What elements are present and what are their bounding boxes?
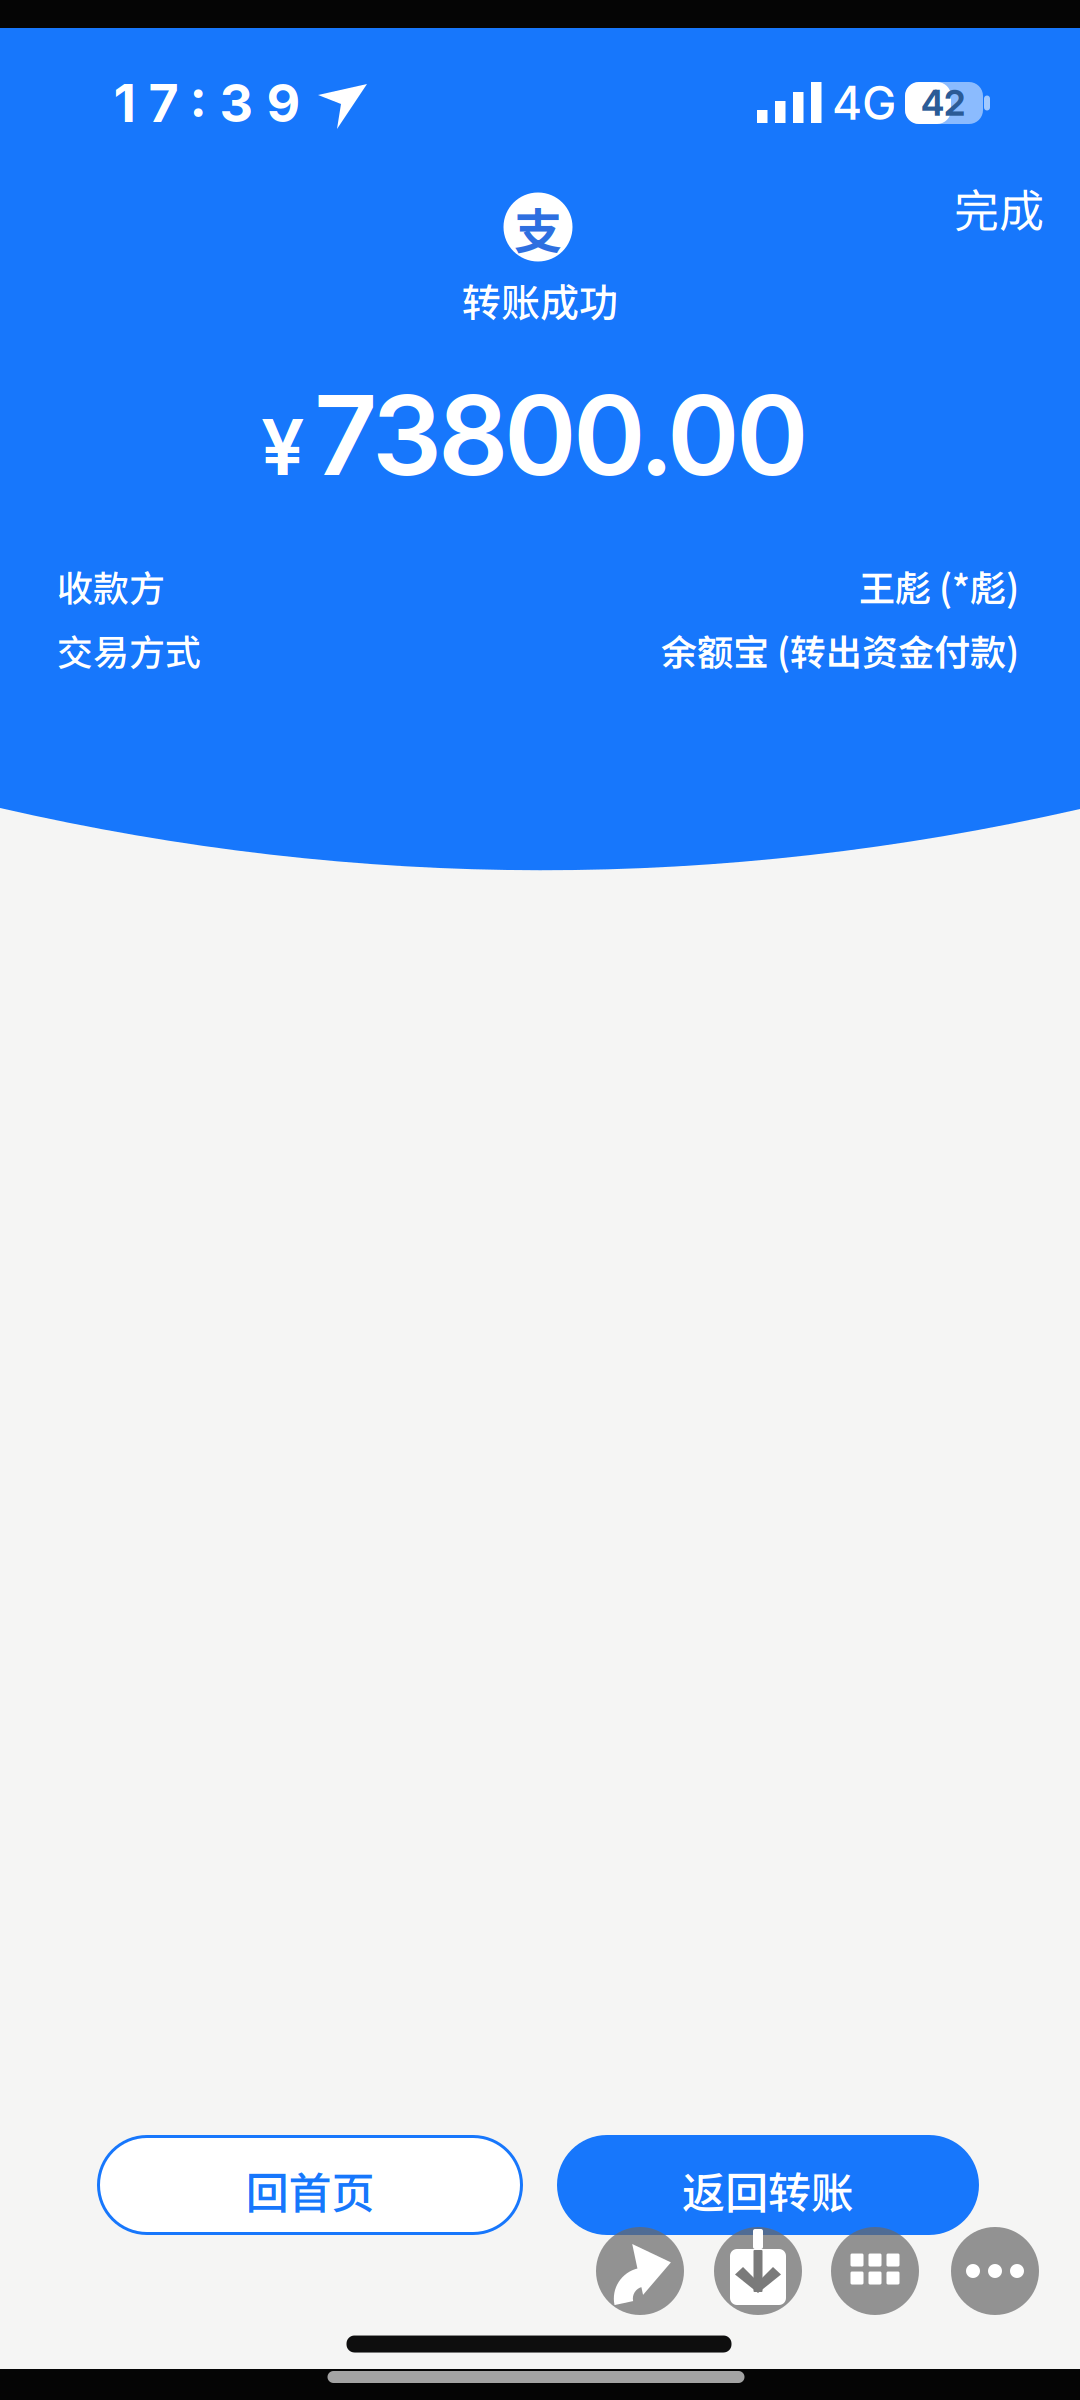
button[interactable]: More [951,2227,1039,2315]
staticText: 支 [514,193,562,263]
button[interactable]: Apps [831,2227,919,2315]
staticText: 交易方式 [57,624,201,676]
button[interactable]: Save [714,2227,802,2315]
staticText: 73800.00 [314,368,809,502]
staticText: 王彪 (*彪) [859,560,1019,612]
staticText: 回首页 [245,2159,374,2221]
staticText: 42 [921,82,965,124]
staticText: 返回转账 [682,2159,854,2221]
staticText: ¥ [261,400,304,494]
staticText: 完成 [954,175,1044,241]
staticText: 转账成功 [462,272,618,328]
button[interactable]: 完成 [954,175,1044,241]
button[interactable]: 返回转账 [557,2135,979,2235]
staticText: 收款方 [57,560,165,612]
staticText: 余额宝 (转出资金付款) [661,624,1019,676]
staticText: 4G [832,75,896,131]
staticText: 17:39 [113,71,300,134]
button[interactable]: Share [596,2227,684,2315]
button[interactable]: 回首页 [97,2135,523,2235]
